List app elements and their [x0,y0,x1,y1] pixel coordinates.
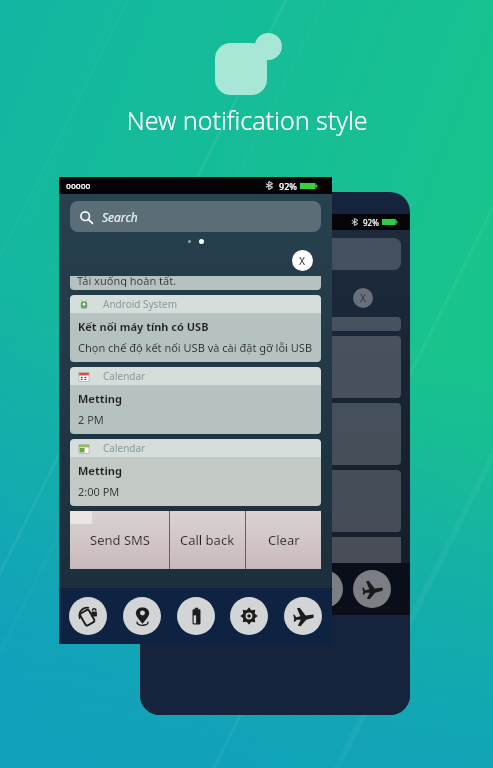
button[interactable]: Battery [177,597,215,635]
staticText: Android System [103,297,178,311]
button[interactable]: Location [123,597,161,635]
staticText: Metting [78,463,122,478]
staticText: Kết nối máy tính có USB [78,319,209,334]
button[interactable]: Calendar [70,439,321,506]
button[interactable]: Close notifications [292,250,313,271]
button[interactable]: Clear [246,511,321,569]
staticText: Calendar [103,441,146,455]
staticText: Call back [180,531,235,549]
staticText: Tải xuống hoàn tất. [77,276,177,287]
staticText: Clear [268,531,300,549]
button[interactable]: Call back [170,511,245,569]
button[interactable]: Brightness [230,597,268,635]
button[interactable]: Android System [70,295,321,362]
button[interactable]: Tải xuống hoàn tất. [70,276,321,290]
button[interactable]: Rotation lock [69,597,107,635]
staticText: Send SMS [90,531,150,549]
staticText: 2:00 PM [78,484,120,499]
staticText: ooooo [66,180,91,191]
staticText: 92% [279,180,297,192]
staticText: Clear [259,541,291,559]
button[interactable]: Calendar [70,367,321,434]
staticText: X [360,291,366,305]
button[interactable]: Search [70,201,321,232]
staticText: Metting [78,391,122,406]
staticText: Chọn chế độ kết nối USB và cài đặt gỡ lỗ… [78,340,313,355]
button[interactable]: Airplane mode [284,597,322,635]
staticText: New notification style [126,103,368,137]
staticText: Search [102,209,138,225]
staticText: Calendar [103,369,146,383]
staticText: 92% [363,217,379,228]
staticText: 2 PM [78,412,104,427]
button[interactable]: Send SMS [70,511,169,569]
staticText: X [299,254,306,268]
